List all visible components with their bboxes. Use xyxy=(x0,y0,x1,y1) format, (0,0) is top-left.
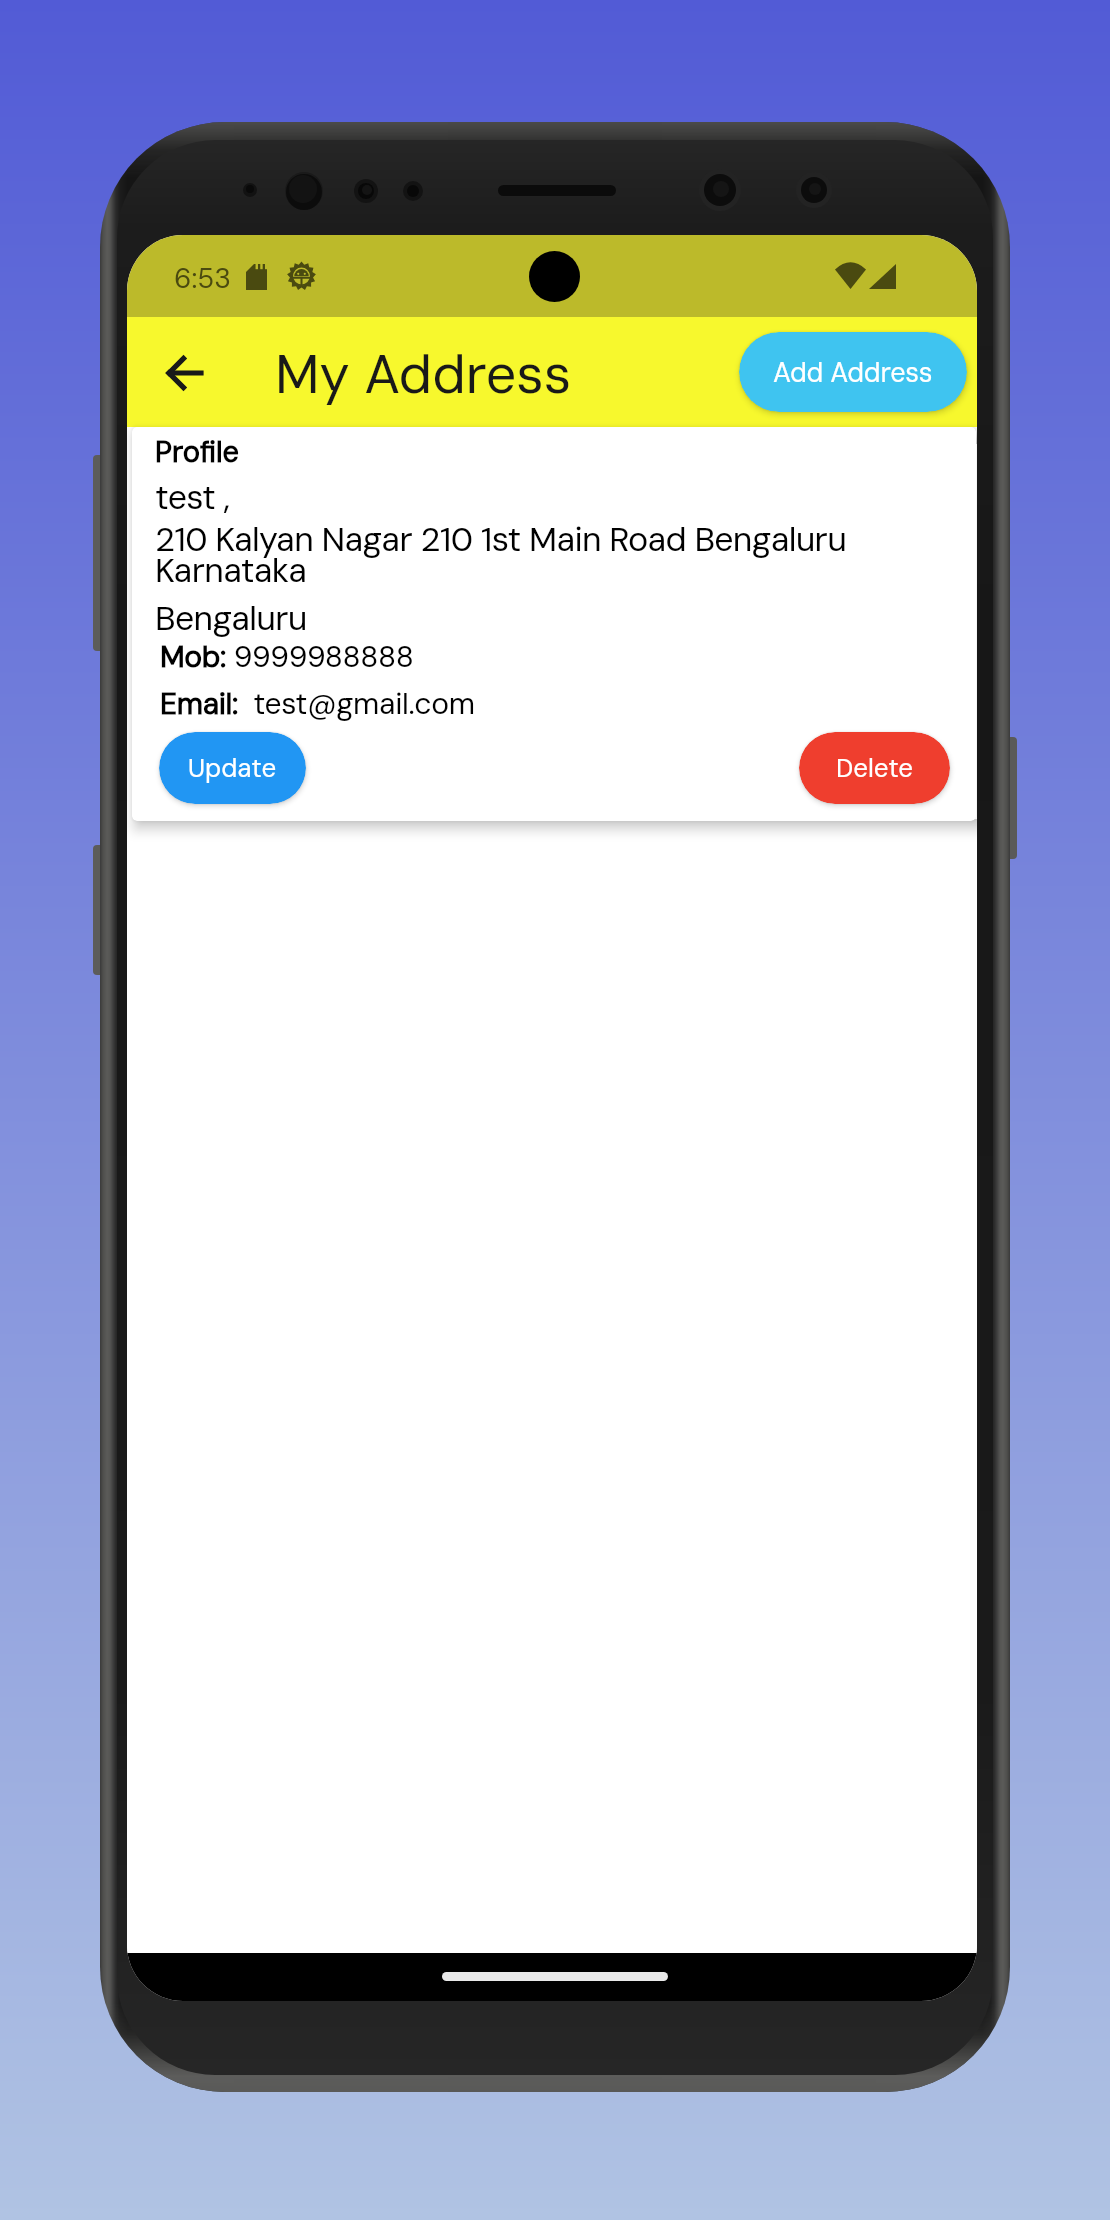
button[interactable]: Update xyxy=(159,732,306,804)
button[interactable]: Add Address xyxy=(739,332,967,412)
staticText: Update xyxy=(188,751,277,785)
staticText: Add Address xyxy=(773,355,933,390)
staticText: Bengaluru xyxy=(155,596,307,640)
staticText: Profile xyxy=(155,433,240,471)
staticText: test , xyxy=(155,475,230,519)
button[interactable]: Delete xyxy=(799,732,950,804)
staticText: My Address xyxy=(275,339,572,409)
staticText: Mob: 9999988888 xyxy=(160,637,414,676)
staticText: Delete xyxy=(836,751,914,785)
staticText: 6:53 xyxy=(174,260,232,296)
staticText: 210 Kalyan Nagar 210 1st Main Road Benga… xyxy=(155,517,871,593)
staticText: Email: test@gmail.com xyxy=(160,684,475,723)
button[interactable]: Back xyxy=(145,333,225,413)
